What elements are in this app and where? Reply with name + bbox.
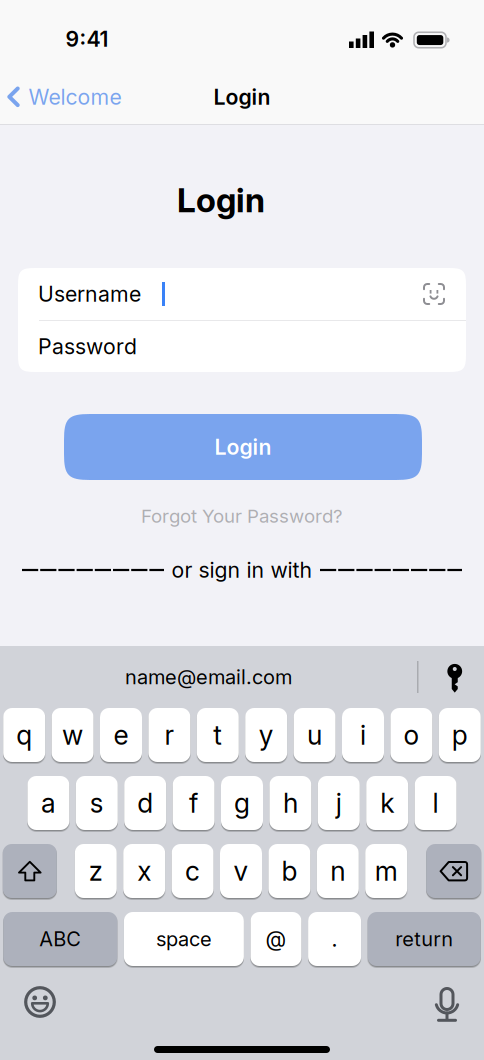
button[interactable]: Shift	[3, 844, 57, 898]
button[interactable]: Password	[18, 321, 466, 372]
button[interactable]: l	[415, 776, 457, 830]
button[interactable]: return	[368, 912, 481, 966]
button[interactable]: Passwords	[418, 646, 484, 708]
staticText: 9:41	[65, 26, 108, 52]
staticText: f	[189, 787, 198, 819]
button[interactable]: o	[390, 708, 432, 762]
button[interactable]: x	[123, 844, 165, 898]
staticText: ABC	[39, 927, 81, 951]
staticText: space	[156, 927, 212, 951]
button[interactable]: n	[317, 844, 359, 898]
button[interactable]: Username	[18, 268, 466, 320]
button[interactable]: v	[220, 844, 262, 898]
button[interactable]: i	[342, 708, 384, 762]
button[interactable]: Delete	[426, 844, 481, 898]
staticText: o	[403, 719, 419, 751]
button[interactable]: w	[52, 708, 94, 762]
staticText: m	[375, 855, 398, 887]
button[interactable]: u	[294, 708, 336, 762]
button[interactable]: Emoji	[12, 974, 68, 1026]
button[interactable]: z	[75, 844, 117, 898]
staticText: h	[283, 787, 298, 819]
button[interactable]: e	[100, 708, 142, 762]
staticText: k	[380, 787, 394, 819]
staticText: q	[16, 719, 32, 751]
staticText: b	[281, 855, 297, 887]
staticText: return	[395, 927, 453, 951]
staticText: @	[265, 926, 286, 952]
button[interactable]: c	[172, 844, 214, 898]
button[interactable]: f	[173, 776, 215, 830]
button[interactable]: h	[269, 776, 311, 830]
button[interactable]: a	[27, 776, 69, 830]
button[interactable]: ABC	[3, 912, 117, 966]
button[interactable]: space	[124, 912, 244, 966]
staticText: n	[330, 855, 345, 887]
staticText: Forgot Your Password?	[141, 505, 343, 527]
staticText: Username	[38, 281, 141, 307]
button[interactable]: r	[148, 708, 190, 762]
button[interactable]: name@email.com	[0, 646, 417, 708]
button[interactable]: Welcome	[6, 84, 121, 110]
button[interactable]: q	[3, 708, 45, 762]
button[interactable]: k	[366, 776, 408, 830]
button[interactable]: t	[197, 708, 239, 762]
staticText: x	[137, 855, 151, 887]
staticText: c	[185, 855, 200, 887]
staticText: w	[62, 719, 83, 751]
button[interactable]: y	[245, 708, 287, 762]
staticText: t	[213, 719, 222, 751]
staticText: e	[113, 719, 128, 751]
staticText: u	[307, 719, 322, 751]
staticText: v	[233, 855, 248, 887]
staticText: Login	[214, 434, 271, 460]
button[interactable]: @	[250, 912, 301, 966]
staticText: name@email.com	[125, 665, 292, 689]
staticText: Login	[177, 180, 265, 220]
staticText: s	[90, 787, 104, 819]
button[interactable]: m	[365, 844, 407, 898]
staticText: y	[259, 719, 274, 751]
staticText: p	[452, 719, 468, 751]
button[interactable]: d	[124, 776, 166, 830]
staticText: a	[41, 787, 56, 819]
staticText: z	[89, 855, 103, 887]
staticText: r	[164, 719, 174, 751]
staticText: or sign in with	[171, 557, 312, 583]
button[interactable]: Dictation	[423, 974, 471, 1026]
button[interactable]: Login	[64, 414, 422, 480]
button[interactable]: j	[318, 776, 360, 830]
staticText: Login	[213, 84, 270, 110]
staticText: i	[360, 719, 366, 751]
staticText: j	[336, 787, 342, 819]
button[interactable]: .	[308, 912, 361, 966]
staticText: g	[234, 787, 250, 819]
button[interactable]: s	[76, 776, 118, 830]
button[interactable]: p	[439, 708, 481, 762]
staticText: d	[137, 787, 153, 819]
staticText: .	[332, 926, 338, 952]
button[interactable]: g	[221, 776, 263, 830]
staticText: l	[433, 787, 439, 819]
staticText: Password	[38, 334, 137, 359]
button[interactable]: b	[268, 844, 310, 898]
button[interactable]: Forgot Your Password?	[141, 505, 343, 527]
staticText: Welcome	[28, 84, 121, 110]
